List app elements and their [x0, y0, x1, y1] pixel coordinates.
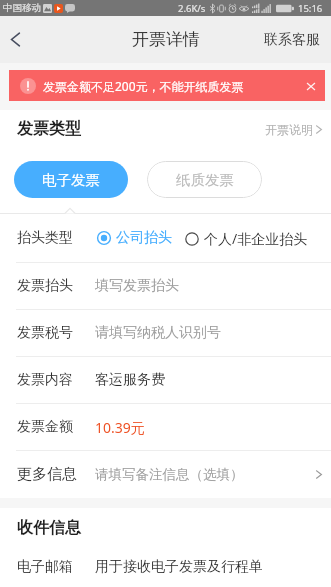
staticText: 更多信息 — [17, 465, 77, 484]
staticText: 开票详情 — [132, 29, 200, 50]
button[interactable]: 纸质发票 — [147, 161, 262, 198]
button[interactable]: 发票内容 — [17, 357, 322, 403]
button[interactable]: 电子发票 — [14, 161, 128, 198]
button[interactable]: 发票抬头 — [17, 263, 322, 309]
staticText: 收件信息 — [17, 518, 81, 538]
staticText: 15:16 — [298, 2, 323, 15]
button[interactable]: 个人/非企业抬头 — [185, 229, 308, 248]
staticText: 发票抬头 — [17, 277, 73, 295]
staticText: 中国移动 — [3, 2, 41, 14]
button[interactable]: 公司抬头 — [97, 229, 172, 247]
button[interactable]: 发票金额 — [17, 404, 322, 450]
staticText: 抬头类型 — [17, 229, 73, 247]
button[interactable]: 更多信息 — [17, 451, 322, 498]
button[interactable]: 联系客服 — [264, 16, 320, 63]
staticText: 发票类型 — [17, 119, 81, 139]
staticText: 发票金额不足200元，不能开纸质发票 — [43, 78, 244, 94]
button[interactable]: Close — [298, 73, 324, 99]
staticText: 2.6K/s — [178, 2, 206, 15]
staticText: 公司抬头 — [116, 229, 172, 247]
button[interactable]: 发票税号 — [17, 310, 322, 356]
staticText: 用于接收电子发票及行程单 — [95, 558, 263, 576]
staticText: 电子邮箱 — [17, 558, 73, 576]
button[interactable]: 电子邮箱 — [17, 547, 322, 587]
button[interactable]: Back — [0, 16, 30, 63]
staticText: 发票税号 — [17, 324, 73, 342]
staticText: 客运服务费 — [95, 371, 165, 389]
button[interactable]: 开票说明 — [265, 114, 322, 144]
staticText: 联系客服 — [264, 31, 320, 49]
staticText: 请填写备注信息（选填） — [95, 466, 244, 483]
staticText: 个人/非企业抬头 — [204, 229, 308, 248]
staticText: 开票说明 — [265, 122, 313, 137]
staticText: 发票内容 — [17, 371, 73, 389]
staticText: 电子发票 — [42, 171, 100, 189]
staticText: 请填写纳税人识别号 — [95, 324, 221, 342]
staticText: 10.39元 — [95, 418, 145, 437]
staticText: 填写发票抬头 — [95, 277, 179, 295]
staticText: 纸质发票 — [176, 171, 234, 189]
staticText: 发票金额 — [17, 418, 73, 436]
